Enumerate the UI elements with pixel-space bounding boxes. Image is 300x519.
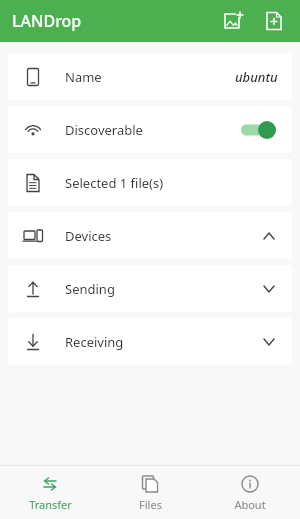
button[interactable]: Add file (254, 1, 294, 41)
button[interactable]: Files (100, 467, 200, 519)
staticText: Sending (65, 280, 260, 298)
staticText: Discoverable (65, 121, 238, 139)
staticText: Selected 1 file(s) (65, 174, 278, 192)
button[interactable]: Discoverable (8, 106, 292, 153)
staticText: Name (65, 68, 235, 86)
button[interactable]: About (200, 467, 300, 519)
staticText: Devices (65, 227, 260, 245)
button[interactable]: Transfer (0, 467, 100, 519)
button[interactable]: Receiving (8, 318, 292, 365)
button[interactable]: Add image (214, 1, 254, 41)
staticText: ubuntu (235, 68, 278, 86)
staticText: About (234, 497, 266, 512)
button[interactable]: Selected 1 file(s) (8, 159, 292, 206)
staticText: Transfer (29, 497, 72, 512)
staticText: Receiving (65, 333, 260, 351)
button[interactable]: Name (8, 53, 292, 100)
staticText: Files (139, 497, 162, 512)
button[interactable]: Devices (8, 212, 292, 259)
button[interactable]: Sending (8, 265, 292, 312)
staticText: LANDrop (12, 10, 82, 32)
